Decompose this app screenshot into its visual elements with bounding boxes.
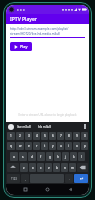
button[interactable]: f bbox=[37, 152, 45, 161]
staticText: i bbox=[68, 144, 69, 148]
staticText: , bbox=[25, 177, 26, 181]
staticText: b bbox=[56, 166, 58, 170]
button[interactable]: b bbox=[53, 163, 60, 172]
button[interactable]: h bbox=[54, 152, 61, 161]
staticText: r bbox=[36, 144, 38, 148]
staticText: a bbox=[13, 155, 15, 159]
staticText: 7 bbox=[60, 134, 62, 138]
button[interactable]: t bbox=[41, 142, 48, 150]
button[interactable]: k bbox=[70, 152, 77, 161]
button[interactable]: Shift bbox=[7, 163, 19, 172]
button[interactable]: Home bbox=[44, 186, 51, 193]
button[interactable]: 1 bbox=[7, 132, 15, 140]
button[interactable]: l bbox=[78, 152, 85, 161]
button[interactable]: 5 bbox=[41, 132, 48, 140]
staticText: 8 bbox=[68, 134, 70, 138]
button[interactable]: 2 bbox=[16, 132, 24, 140]
button[interactable]: d bbox=[28, 152, 36, 161]
button[interactable]: m bbox=[69, 163, 76, 172]
staticText: stream/HD720/live-hd-media.m3u8 bbox=[10, 32, 60, 36]
button[interactable]: j bbox=[62, 152, 69, 161]
staticText: k bbox=[73, 155, 75, 159]
staticText: ?123 bbox=[11, 177, 17, 181]
button[interactable]: s bbox=[19, 152, 27, 161]
staticText: z bbox=[23, 166, 25, 170]
button[interactable]: 6 bbox=[49, 132, 56, 140]
button[interactable]: z bbox=[20, 163, 28, 172]
staticText: 0 bbox=[84, 134, 86, 138]
staticText: http://cdn3.stream-example.com/playlist/ bbox=[10, 27, 69, 31]
button[interactable]: o bbox=[73, 142, 80, 150]
button[interactable]: Backspace bbox=[77, 163, 88, 172]
button[interactable]: 3 bbox=[25, 132, 32, 140]
button[interactable]: Voice input bbox=[8, 124, 14, 130]
staticText: o bbox=[76, 144, 78, 148]
staticText: h bbox=[57, 155, 59, 159]
button[interactable]: , bbox=[21, 174, 29, 183]
staticText: w bbox=[19, 144, 22, 148]
staticText: m bbox=[71, 166, 74, 170]
button[interactable]: Play bbox=[10, 42, 32, 51]
button[interactable]: p bbox=[81, 142, 88, 150]
staticText: y bbox=[52, 144, 54, 148]
button[interactable]: a bbox=[10, 152, 18, 161]
staticText: . bbox=[69, 177, 70, 181]
button[interactable]: c bbox=[37, 163, 44, 172]
button[interactable]: q bbox=[7, 142, 15, 150]
staticText: g bbox=[49, 155, 51, 159]
staticText: f bbox=[40, 155, 42, 159]
staticText: Enter a stream URL above to begin playba… bbox=[10, 113, 85, 117]
staticText: c bbox=[40, 166, 42, 170]
staticText: 4 bbox=[36, 134, 38, 138]
staticText: 3 bbox=[28, 134, 30, 138]
button[interactable]: 8 bbox=[65, 132, 72, 140]
button[interactable]: More options bbox=[83, 123, 87, 130]
staticText: 1 bbox=[10, 134, 12, 138]
button[interactable]: y bbox=[49, 142, 56, 150]
button[interactable]: Back bbox=[67, 186, 74, 193]
button[interactable]: 7 bbox=[57, 132, 64, 140]
button[interactable]: ?123 bbox=[7, 174, 20, 183]
staticText: Play bbox=[20, 44, 28, 49]
button[interactable]: w bbox=[16, 142, 24, 150]
staticText: s bbox=[22, 155, 24, 159]
staticText: 6 bbox=[52, 134, 54, 138]
staticText: e bbox=[28, 144, 30, 148]
staticText: 2 bbox=[19, 134, 21, 138]
button[interactable]: x bbox=[29, 163, 36, 172]
button[interactable]: Enter bbox=[74, 174, 88, 183]
button[interactable]: 9 bbox=[73, 132, 80, 140]
staticText: x bbox=[32, 166, 34, 170]
staticText: 9 bbox=[76, 134, 78, 138]
button[interactable]: e bbox=[25, 142, 32, 150]
button[interactable]: Recents bbox=[22, 186, 29, 193]
staticText: d bbox=[31, 155, 33, 159]
staticText: p bbox=[84, 144, 86, 148]
button[interactable]: live m3u8 bbox=[17, 125, 31, 129]
button[interactable]: i bbox=[65, 142, 72, 150]
button[interactable]: n bbox=[61, 163, 68, 172]
staticText: t bbox=[44, 144, 46, 148]
staticText: u bbox=[60, 144, 62, 148]
staticText: v bbox=[48, 166, 50, 170]
staticText: n bbox=[64, 166, 66, 170]
button[interactable]: http://cdn3.stream-example.com/playlist/ bbox=[10, 27, 85, 38]
button[interactable]: r bbox=[33, 142, 40, 150]
button[interactable]: hls m3u8 bbox=[38, 125, 51, 129]
button[interactable]: v bbox=[45, 163, 52, 172]
staticText: IPTV Player bbox=[10, 16, 37, 23]
staticText: j bbox=[65, 155, 66, 159]
button[interactable]: u bbox=[57, 142, 64, 150]
button[interactable]: 4 bbox=[33, 132, 40, 140]
staticText: q bbox=[10, 144, 12, 148]
staticText: l bbox=[81, 155, 82, 159]
button[interactable]: . bbox=[65, 174, 73, 183]
button[interactable]: g bbox=[46, 152, 53, 161]
staticText: 5 bbox=[44, 134, 46, 138]
button[interactable]: 0 bbox=[81, 132, 88, 140]
